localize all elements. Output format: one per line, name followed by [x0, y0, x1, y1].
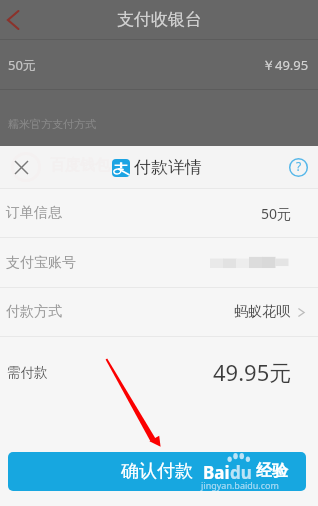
staticText: 确认付款: [121, 460, 193, 483]
button[interactable]: 付款方式: [0, 288, 318, 336]
button[interactable]: 订单信息: [0, 189, 318, 237]
button[interactable]: 支付宝账号: [0, 238, 318, 287]
staticText: 50元: [261, 204, 292, 223]
staticText: jingyan.baidu.com: [201, 479, 279, 491]
staticText: 付款方式: [6, 303, 62, 321]
staticText: 需付款: [7, 364, 48, 381]
staticText: 订单信息: [6, 204, 62, 222]
staticText: 付款详情: [134, 157, 202, 178]
staticText: 支付收银台: [117, 9, 202, 30]
staticText: 50元: [8, 56, 36, 74]
staticText: 支付宝账号: [6, 254, 76, 272]
button[interactable]: Close: [0, 146, 42, 188]
staticText: du: [230, 461, 252, 484]
button[interactable]: Back: [0, 0, 34, 40]
staticText: ￥49.95: [262, 56, 309, 74]
staticText: 糯米官方支付方式: [8, 117, 96, 131]
staticText: 蚂蚁花呗: [234, 303, 290, 321]
staticText: 49.95元: [213, 357, 292, 387]
staticText: ?: [296, 158, 302, 174]
staticText: 经验: [256, 461, 288, 481]
button[interactable]: 确认付款: [8, 452, 306, 491]
staticText: Bai: [203, 461, 230, 484]
button[interactable]: Help: [283, 146, 314, 188]
